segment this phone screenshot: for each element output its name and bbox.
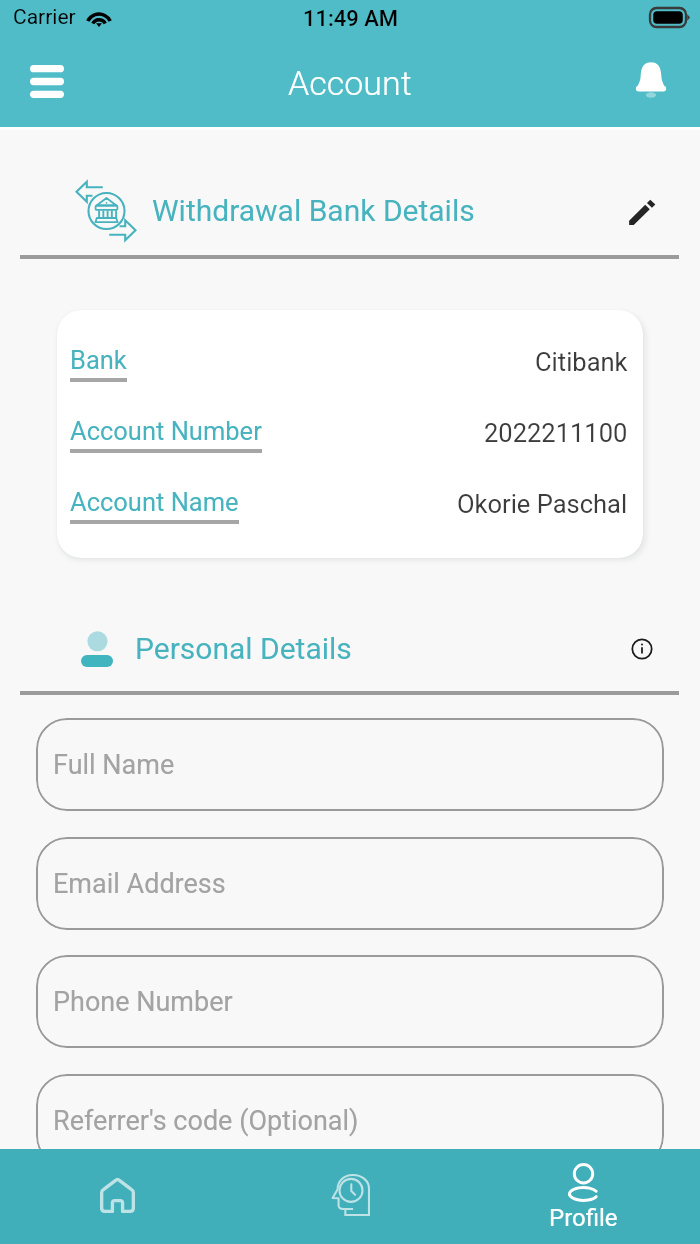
button[interactable]: Withdrawal Bank Details [66, 173, 680, 247]
button[interactable]: Personal Details [135, 628, 352, 668]
staticText: Withdrawal Bank Details [152, 193, 475, 228]
staticText: Personal Details [135, 631, 352, 666]
button[interactable]: Home [0, 1149, 234, 1244]
staticText: Phone Number [53, 986, 233, 1018]
staticText: Profile [549, 1204, 618, 1232]
button[interactable]: Edit [618, 188, 666, 236]
button[interactable]: Referrer's code (Optional) [36, 1074, 664, 1167]
button[interactable]: Full Name [36, 718, 664, 811]
button[interactable]: Notifications [625, 54, 677, 106]
button[interactable]: Profile [467, 1149, 700, 1244]
staticText: Carrier [13, 5, 76, 30]
button[interactable]: Account Number [57, 398, 643, 469]
button[interactable]: Account Name [57, 469, 643, 540]
staticText: Bank [70, 345, 127, 375]
staticText: Account Number [70, 416, 262, 446]
staticText: 11:49 AM [303, 6, 399, 32]
staticText: 2022211100 [484, 418, 628, 448]
button[interactable]: Menu [18, 52, 76, 110]
button[interactable]: History [234, 1149, 467, 1244]
staticText: Account Name [70, 487, 239, 517]
staticText: Okorie Paschal [457, 489, 628, 519]
staticText: Citibank [535, 347, 628, 377]
staticText: Referrer's code (Optional) [53, 1105, 359, 1137]
button[interactable]: Phone Number [36, 955, 664, 1048]
staticText: Account [288, 63, 412, 103]
button[interactable]: Bank [57, 327, 643, 398]
button[interactable]: Email Address [36, 837, 664, 930]
staticText: Email Address [53, 868, 226, 900]
button[interactable]: Information [619, 626, 665, 672]
staticText: Full Name [53, 749, 175, 781]
